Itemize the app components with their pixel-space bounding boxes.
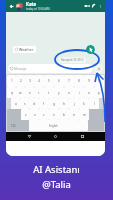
staticText: 7 <box>68 79 70 83</box>
button[interactable]: e <box>25 87 34 98</box>
staticText: p <box>98 91 100 95</box>
staticText: Message <box>14 67 27 71</box>
button[interactable]: Weather <box>13 46 36 53</box>
button[interactable]: Video call <box>83 2 91 10</box>
button[interactable]: Profile photo <box>15 2 24 11</box>
button[interactable]: q <box>7 87 16 98</box>
staticText: Bangkok 27-35°C <box>61 58 84 62</box>
button[interactable]: s <box>20 98 29 109</box>
button[interactable]: Message <box>8 64 93 73</box>
staticText: q <box>11 91 13 95</box>
staticText: z <box>25 113 27 117</box>
button[interactable]: 0 <box>94 75 104 87</box>
staticText: t <box>48 91 50 95</box>
button[interactable]: j <box>69 98 79 109</box>
button[interactable]: 8 <box>74 75 84 87</box>
button[interactable]: y <box>54 87 64 98</box>
staticText: 6 <box>58 79 60 83</box>
staticText: AI Asistanı <box>33 163 80 176</box>
button[interactable]: a <box>11 98 20 109</box>
button[interactable]: m <box>79 109 89 120</box>
staticText: @Talia <box>42 178 71 191</box>
staticText: j <box>74 102 75 106</box>
staticText: f <box>43 102 45 106</box>
staticText: 5 <box>48 79 50 83</box>
staticText: 3 <box>29 79 31 83</box>
button[interactable]: f <box>39 98 49 109</box>
staticText: 0 <box>98 79 100 83</box>
button[interactable]: Back <box>26 133 33 140</box>
staticText: Kate <box>26 1 37 7</box>
staticText: e <box>29 91 31 95</box>
staticText: a <box>15 102 17 106</box>
staticText: n <box>73 113 75 117</box>
button[interactable]: Voice call <box>91 3 98 10</box>
button[interactable]: i <box>74 87 84 98</box>
staticText: l <box>94 102 95 106</box>
staticText: k <box>83 102 85 106</box>
staticText: o <box>88 91 90 95</box>
staticText: 1 <box>11 79 13 83</box>
button[interactable]: Recent apps <box>79 133 86 140</box>
staticText: 123 <box>11 124 16 128</box>
staticText: 8 <box>78 79 80 83</box>
staticText: today at 10:54 AM <box>26 7 50 11</box>
staticText: s <box>24 102 26 106</box>
staticText: b <box>63 113 65 117</box>
staticText: English <box>49 124 58 128</box>
staticText: 9 <box>88 79 90 83</box>
button[interactable] <box>89 109 104 120</box>
button[interactable]: Voice message <box>94 64 103 73</box>
button[interactable]: Home <box>52 133 59 140</box>
staticText: Weather <box>19 47 34 52</box>
button[interactable]: k <box>79 98 89 109</box>
button[interactable]: Bangkok 27-35°C <box>59 57 86 63</box>
button[interactable]: 7 <box>64 75 74 87</box>
button[interactable]: 2 <box>16 75 25 87</box>
staticText: w <box>19 91 22 95</box>
button[interactable]: t <box>44 87 54 98</box>
button[interactable]: 4 <box>34 75 44 87</box>
button[interactable]: u <box>64 87 74 98</box>
button[interactable]: x <box>30 109 39 120</box>
staticText: . <box>83 124 84 128</box>
button[interactable]: English <box>29 120 78 131</box>
staticText: 4 <box>38 79 40 83</box>
button[interactable]: 9 <box>84 75 94 87</box>
staticText: i <box>79 91 80 95</box>
staticText: 2 <box>20 79 22 83</box>
staticText: g <box>53 102 55 106</box>
staticText: c <box>43 113 45 117</box>
button[interactable]: o <box>84 87 94 98</box>
button[interactable]: 3 <box>25 75 34 87</box>
staticText: x <box>34 113 36 117</box>
staticText: v <box>53 113 55 117</box>
button[interactable]: Back <box>8 3 14 9</box>
button[interactable]: h <box>59 98 69 109</box>
button[interactable]: l <box>89 98 99 109</box>
button[interactable]: c <box>39 109 49 120</box>
button[interactable]: d <box>29 98 39 109</box>
button[interactable]: w <box>16 87 25 98</box>
button[interactable]: 1 <box>7 75 16 87</box>
button[interactable]: n <box>69 109 79 120</box>
button[interactable]: r <box>34 87 44 98</box>
button[interactable]: Smart select <box>86 45 95 54</box>
staticText: m <box>83 113 86 117</box>
button[interactable]: More options <box>98 4 103 9</box>
button[interactable]: 6 <box>54 75 64 87</box>
button[interactable]: v <box>49 109 59 120</box>
button[interactable]: 5 <box>44 75 54 87</box>
button[interactable]: b <box>59 109 69 120</box>
staticText: d <box>33 102 35 106</box>
button[interactable]: 123 <box>7 120 20 131</box>
button[interactable]: z <box>21 109 30 120</box>
staticText: u <box>68 91 70 95</box>
button[interactable]: g <box>49 98 59 109</box>
staticText: r <box>38 91 40 95</box>
button[interactable]: p <box>94 87 104 98</box>
